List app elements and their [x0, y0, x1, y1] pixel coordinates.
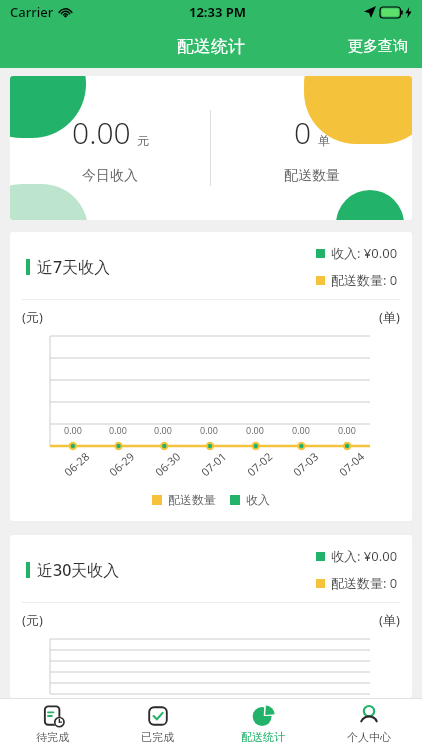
staticText: 单: [318, 133, 330, 148]
staticText: 0.00: [72, 112, 131, 153]
staticText: 07-04: [336, 449, 367, 479]
staticText: 配送数量: 0: [331, 271, 398, 289]
button[interactable]: 已完成: [105, 698, 210, 750]
staticText: 0.00: [200, 424, 218, 436]
staticText: 个人中心: [347, 730, 391, 744]
button[interactable]: 近30天收入: [10, 535, 412, 698]
staticText: 配送统计: [177, 36, 245, 57]
staticText: 收入: ¥0.00: [331, 547, 398, 565]
staticText: 12:33 PM: [189, 3, 247, 21]
staticText: 近7天收入: [37, 256, 111, 278]
button[interactable]: 待完成: [0, 698, 105, 750]
button[interactable]: 近7天收入: [10, 232, 412, 521]
staticText: 06-28: [61, 449, 92, 479]
staticText: 0.00: [154, 424, 172, 436]
other: 已完成: [147, 705, 169, 727]
staticText: 06-29: [106, 449, 137, 479]
staticText: 配送统计: [241, 730, 285, 744]
staticText: 0: [294, 112, 312, 153]
staticText: 今日收入: [82, 167, 138, 185]
staticText: 收入: [246, 492, 270, 507]
staticText: 0.00: [109, 424, 127, 436]
staticText: 06-30: [152, 449, 183, 479]
staticText: (单): [379, 308, 400, 326]
staticText: 07-02: [244, 449, 275, 479]
button[interactable]: 0.00: [10, 76, 412, 220]
staticText: 配送数量: [284, 167, 340, 185]
staticText: 0.00: [292, 424, 310, 436]
button[interactable]: 更多查询: [334, 27, 422, 66]
staticText: 0.00: [338, 424, 356, 436]
staticText: 元: [137, 133, 149, 148]
staticText: (单): [379, 611, 400, 629]
staticText: 近30天收入: [37, 559, 120, 581]
staticText: 0.00: [246, 424, 264, 436]
button[interactable]: 配送统计: [210, 698, 316, 750]
button[interactable]: 个人中心: [316, 698, 422, 750]
other: 个人中心: [358, 705, 380, 727]
staticText: (元): [22, 308, 43, 326]
staticText: 配送数量: 0: [331, 574, 398, 592]
staticText: 0.00: [64, 424, 82, 436]
staticText: 配送数量: [168, 492, 216, 507]
staticText: (元): [22, 611, 43, 629]
staticText: 已完成: [141, 730, 174, 744]
staticText: 更多查询: [348, 37, 408, 56]
staticText: 待完成: [36, 730, 69, 744]
staticText: 收入: ¥0.00: [331, 244, 398, 262]
staticText: Carrier: [10, 3, 54, 21]
other: 待完成: [42, 705, 64, 727]
staticText: 07-03: [290, 449, 321, 479]
staticText: 07-01: [198, 449, 229, 479]
other: 配送统计: [252, 705, 274, 727]
